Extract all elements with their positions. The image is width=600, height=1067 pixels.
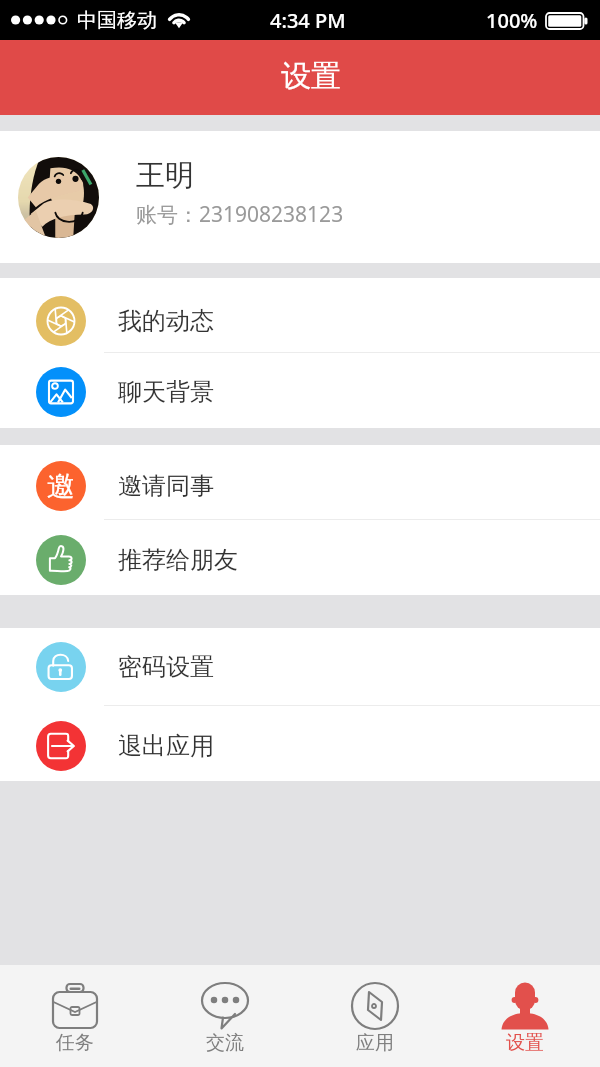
button[interactable]: 邀	[0, 445, 600, 520]
staticText: 邀请同事	[118, 471, 214, 501]
button[interactable]: Settings	[450, 965, 600, 1067]
staticText: 账号：231908238123	[136, 200, 344, 229]
staticText: 中国移动	[77, 8, 157, 33]
button[interactable]: 王明	[0, 131, 600, 263]
button[interactable]: 我的动态	[0, 278, 600, 353]
staticText: 设置	[506, 1031, 544, 1055]
staticText: 聊天背景	[118, 377, 214, 407]
staticText: 退出应用	[118, 731, 214, 761]
staticText: 设置	[281, 57, 341, 95]
button[interactable]: 退出应用	[0, 706, 600, 781]
staticText: 4:34 PM	[270, 7, 346, 34]
staticText: 100%	[486, 7, 538, 34]
staticText: 密码设置	[118, 652, 214, 682]
button[interactable]: 密码设置	[0, 628, 600, 706]
staticText: 应用	[356, 1031, 394, 1055]
button[interactable]: 推荐给朋友	[0, 520, 600, 595]
button[interactable]: Tasks	[0, 965, 150, 1067]
button[interactable]: 聊天背景	[0, 353, 600, 428]
staticText: 推荐给朋友	[118, 545, 238, 575]
button[interactable]: Apps	[300, 965, 450, 1067]
staticText: 任务	[56, 1031, 94, 1055]
staticText: 我的动态	[118, 306, 214, 336]
staticText: 邀	[47, 469, 75, 504]
staticText: 王明	[136, 157, 194, 194]
staticText: 交流	[206, 1031, 244, 1055]
button[interactable]: Chat	[150, 965, 300, 1067]
